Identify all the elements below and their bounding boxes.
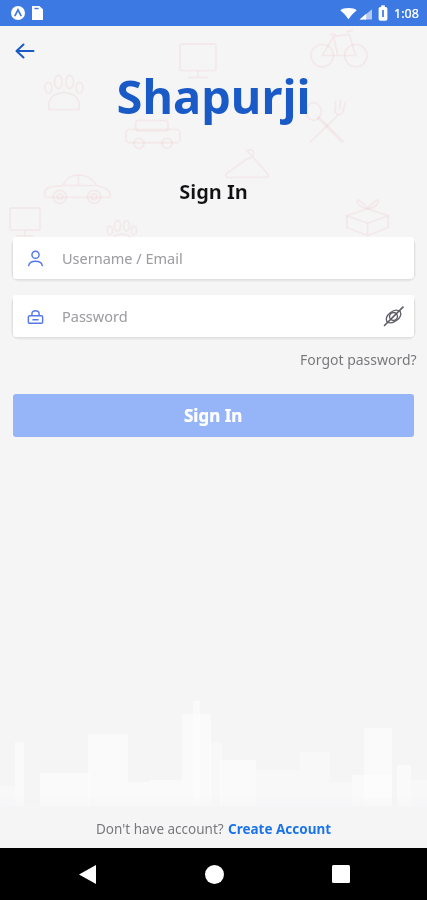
staticText: Sign In bbox=[0, 178, 427, 205]
button[interactable]: Sign In bbox=[13, 394, 414, 437]
button[interactable]: Password bbox=[13, 295, 414, 337]
button[interactable]: Recent apps bbox=[317, 850, 365, 898]
staticText: Shapurji bbox=[0, 64, 427, 128]
button[interactable]: Back bbox=[63, 850, 111, 898]
button[interactable]: Home bbox=[190, 850, 238, 898]
button[interactable]: Create Account bbox=[228, 820, 332, 838]
button[interactable]: Forgot password? bbox=[298, 348, 419, 371]
button[interactable]: Username / Email bbox=[13, 237, 414, 279]
staticText: Don't have account? bbox=[96, 820, 228, 838]
staticText: Create Account bbox=[228, 820, 332, 838]
staticText: Sign In bbox=[184, 404, 243, 427]
staticText: Forgot password? bbox=[300, 350, 417, 369]
staticText: Password bbox=[62, 306, 128, 326]
button[interactable]: Show password bbox=[372, 295, 414, 337]
staticText: 1:08 bbox=[394, 5, 419, 22]
staticText: Username / Email bbox=[62, 248, 183, 268]
button[interactable]: Back bbox=[6, 32, 44, 70]
